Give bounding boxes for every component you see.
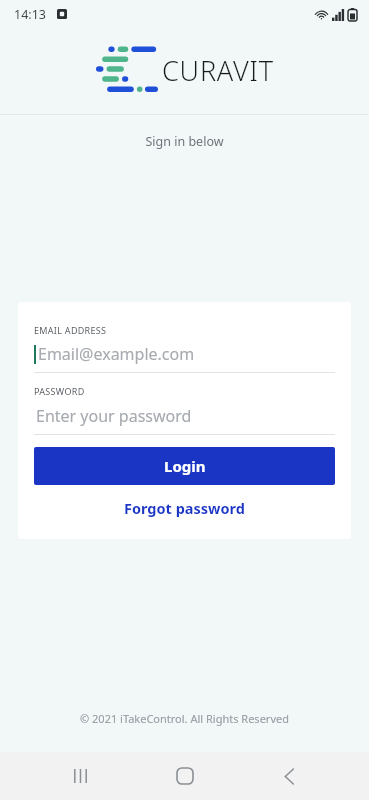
staticText: CURAVIT	[162, 52, 274, 89]
staticText: EMAIL ADDRESS	[34, 324, 107, 336]
button[interactable]: Email@example.com	[34, 342, 335, 366]
button[interactable]: Enter your password	[34, 405, 335, 427]
staticText: Email@example.com	[38, 343, 195, 365]
staticText: Forgot password	[124, 498, 245, 518]
button[interactable]: Forgot password	[34, 495, 335, 521]
button[interactable]: Back	[265, 752, 313, 800]
staticText: © 2021 iTakeControl. All Rights Reserved	[0, 711, 369, 726]
staticText: 14:13	[14, 6, 46, 23]
button[interactable]: Recent apps	[56, 752, 104, 800]
button[interactable]: Home	[161, 752, 209, 800]
button[interactable]: Login	[34, 447, 335, 485]
staticText: Enter your password	[36, 405, 192, 427]
staticText: PASSWORD	[34, 385, 85, 397]
staticText: Login	[164, 456, 206, 476]
staticText: Sign in below	[0, 133, 369, 150]
